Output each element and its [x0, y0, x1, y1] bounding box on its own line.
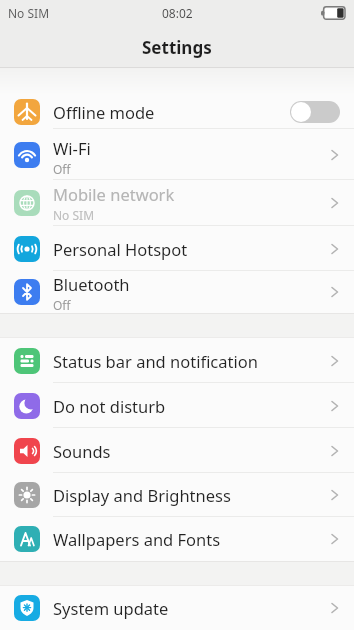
- button[interactable]: Wi-Fi: [0, 129, 354, 180]
- button[interactable]: Offline mode: [0, 95, 354, 129]
- button[interactable]: Status bar and notification: [0, 338, 354, 383]
- staticText: Settings: [142, 36, 212, 59]
- button[interactable]: Sounds: [0, 428, 354, 473]
- staticText: No SIM: [8, 5, 50, 21]
- button[interactable]: System update: [0, 586, 354, 630]
- button[interactable]: Wallpapers and Fonts: [0, 517, 354, 561]
- staticText: Bluetooth: [53, 273, 130, 295]
- staticText: Status bar and notification: [53, 350, 258, 372]
- staticText: Off: [53, 161, 71, 177]
- staticText: Wi-Fi: [53, 137, 91, 159]
- staticText: No SIM: [53, 207, 95, 223]
- button[interactable]: Bluetooth: [0, 271, 354, 313]
- staticText: Off: [53, 297, 71, 313]
- button[interactable]: Mobile network: [0, 180, 354, 226]
- staticText: Wallpapers and Fonts: [53, 528, 221, 550]
- button[interactable]: Do not disturb: [0, 383, 354, 428]
- staticText: Display and Brightness: [53, 484, 231, 506]
- staticText: Mobile network: [53, 183, 175, 205]
- button[interactable]: Display and Brightness: [0, 473, 354, 517]
- staticText: 08:02: [162, 5, 193, 21]
- button[interactable]: Personal Hotspot: [0, 226, 354, 271]
- staticText: System update: [53, 597, 169, 619]
- staticText: Sounds: [53, 440, 111, 462]
- staticText: Do not disturb: [53, 395, 166, 417]
- staticText: Offline mode: [53, 101, 155, 123]
- staticText: Personal Hotspot: [53, 238, 188, 260]
